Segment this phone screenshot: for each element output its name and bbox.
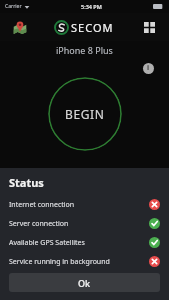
button[interactable]: Ok <box>9 273 160 292</box>
staticText: i <box>147 63 150 73</box>
button[interactable]: Map <box>10 17 30 37</box>
staticText: SECOM <box>71 20 114 35</box>
staticText: Service running in background <box>9 257 149 267</box>
staticText: BEGIN <box>65 106 105 122</box>
button[interactable]: Internet connection <box>9 195 160 214</box>
button[interactable]: Service running in background <box>9 252 160 271</box>
button[interactable]: Information <box>141 61 155 75</box>
staticText: Server connection <box>9 219 149 229</box>
staticText: Internet connection <box>9 200 149 210</box>
staticText: Ok <box>78 277 91 289</box>
staticText: Carrier <box>5 3 22 10</box>
staticText: Status <box>9 175 44 190</box>
button[interactable]: Available GPS Satellites <box>9 233 160 252</box>
staticText: 5:34 PM <box>81 3 102 10</box>
button[interactable]: Server connection <box>9 214 160 233</box>
button[interactable]: BEGIN <box>48 77 122 151</box>
staticText: Available GPS Satellites <box>9 238 149 248</box>
button[interactable]: Menu <box>139 17 159 37</box>
staticText: iPhone 8 Plus <box>56 44 113 56</box>
